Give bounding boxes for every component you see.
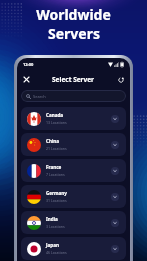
staticText: Select Server bbox=[52, 75, 95, 84]
button[interactable]: Japan bbox=[21, 237, 126, 260]
button[interactable]: Germany bbox=[21, 185, 126, 208]
staticText: 21 Locations bbox=[46, 146, 67, 151]
button[interactable]: Close bbox=[21, 74, 32, 85]
staticText: 3 Locations bbox=[46, 224, 65, 229]
button[interactable]: Refresh bbox=[115, 74, 126, 85]
staticText: Canada bbox=[46, 112, 64, 118]
button[interactable]: Expand bbox=[111, 167, 119, 175]
button[interactable]: India bbox=[21, 211, 126, 234]
staticText: France bbox=[46, 164, 62, 170]
staticText: Worldwide bbox=[36, 5, 111, 24]
button[interactable]: Canada bbox=[21, 107, 126, 130]
button[interactable]: Expand bbox=[111, 141, 119, 149]
button[interactable]: Expand bbox=[111, 219, 119, 227]
button[interactable]: China bbox=[21, 133, 126, 156]
staticText: 46 Locations bbox=[46, 250, 67, 255]
staticText: Germany bbox=[46, 190, 67, 196]
staticText: China bbox=[46, 138, 60, 144]
staticText: 13 Locations bbox=[46, 120, 67, 125]
button[interactable]: France bbox=[21, 159, 126, 182]
staticText: 31 Locations bbox=[46, 198, 67, 203]
button[interactable]: Expand bbox=[111, 193, 119, 201]
staticText: Search bbox=[33, 94, 46, 99]
staticText: 7 Locations bbox=[46, 172, 65, 177]
staticText: Japan bbox=[46, 242, 59, 248]
button[interactable]: Expand bbox=[111, 245, 119, 253]
staticText: India bbox=[46, 216, 58, 222]
button[interactable]: Expand bbox=[111, 115, 119, 123]
staticText: Servers bbox=[48, 24, 100, 43]
button[interactable]: Search bbox=[21, 90, 126, 102]
staticText: 12:00 bbox=[23, 62, 34, 67]
